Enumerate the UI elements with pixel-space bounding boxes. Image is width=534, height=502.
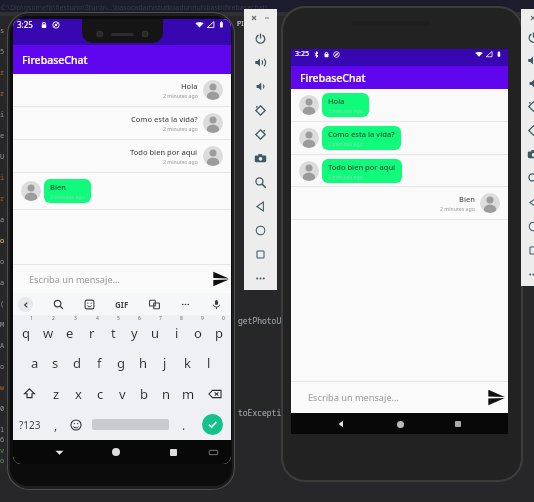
staticText: s	[0, 26, 5, 36]
button[interactable]: Close	[252, 16, 256, 20]
button[interactable]: Stickers	[84, 299, 95, 310]
button[interactable]: More options	[180, 299, 191, 310]
button[interactable]: Rotate right	[244, 122, 277, 146]
button[interactable]: ,	[46, 409, 66, 440]
button[interactable]: More	[521, 262, 534, 286]
button[interactable]: Home	[107, 443, 125, 461]
staticText: o	[194, 324, 202, 342]
button[interactable]: 0	[208, 315, 229, 347]
button[interactable]: Overview	[244, 242, 277, 266]
button[interactable]: 2	[37, 315, 59, 347]
button[interactable]: n	[155, 378, 177, 409]
button[interactable]: Rotate left	[521, 95, 534, 118]
staticText: e	[66, 324, 74, 342]
button[interactable]: Overview	[521, 238, 534, 262]
button[interactable]: 4	[81, 315, 103, 347]
button[interactable]: Take screenshot	[521, 142, 534, 166]
button[interactable]: 9	[187, 315, 208, 347]
staticText: u	[151, 324, 160, 342]
button[interactable]: Power	[521, 26, 534, 49]
button[interactable]: Back	[18, 297, 33, 312]
button[interactable]: .	[174, 409, 194, 440]
button[interactable]: m	[177, 378, 199, 409]
button[interactable]: Volume down	[244, 74, 277, 98]
button[interactable]: Recent apps	[164, 443, 182, 461]
button[interactable]: Escriba un mensaje...	[13, 265, 231, 293]
button[interactable]: Recent apps	[450, 416, 466, 432]
button[interactable]: Take screenshot	[244, 146, 277, 170]
button[interactable]: Backspace	[199, 378, 231, 409]
staticText: FirebaseChat	[300, 71, 366, 85]
button[interactable]: 8	[166, 315, 187, 347]
button[interactable]: Power	[244, 26, 277, 50]
button[interactable]: v	[111, 378, 133, 409]
button[interactable]: Home	[244, 218, 277, 242]
button[interactable]: 1	[15, 315, 37, 347]
button[interactable]: Voice input	[211, 299, 222, 310]
button[interactable]: k	[176, 347, 198, 378]
button[interactable]: c	[89, 378, 111, 409]
button[interactable]: Minimize	[265, 16, 269, 20]
button[interactable]: Todo bien por aqui	[13, 140, 231, 173]
button[interactable]: Back	[50, 443, 68, 461]
button[interactable]: l	[198, 347, 220, 378]
button[interactable]: Back	[244, 194, 277, 218]
button[interactable]: Volume up	[521, 49, 534, 72]
button[interactable]: GIF	[115, 299, 129, 310]
button[interactable]: z	[45, 378, 67, 409]
button[interactable]: Search	[53, 299, 64, 310]
button[interactable]: Send	[213, 271, 229, 287]
button[interactable]: f	[88, 347, 110, 378]
button[interactable]: d	[66, 347, 88, 378]
staticText: .	[182, 417, 186, 433]
button[interactable]: b	[133, 378, 155, 409]
button[interactable]	[86, 409, 174, 440]
button[interactable]: FirebaseChat	[13, 45, 231, 74]
button[interactable]: FirebaseChat	[291, 66, 508, 89]
button[interactable]: Back	[333, 416, 349, 432]
button[interactable]: Back	[521, 190, 534, 214]
button[interactable]: a	[24, 347, 45, 378]
button[interactable]: Send	[488, 389, 505, 406]
staticText: r	[89, 324, 95, 342]
button[interactable]: Rotate left	[244, 98, 277, 122]
button[interactable]: Volume down	[521, 72, 534, 95]
button[interactable]: Escriba un mensaje...	[291, 382, 508, 413]
button[interactable]: Enter	[202, 414, 223, 435]
button[interactable]: Hola	[291, 89, 508, 122]
button[interactable]: Shift	[13, 378, 45, 409]
button[interactable]: Como esta la vida?	[13, 107, 231, 140]
button[interactable]: Emoji	[66, 409, 86, 440]
staticText: Hola	[181, 81, 198, 91]
staticText: Escriba un mensaje...	[29, 273, 120, 286]
button[interactable]: ?123	[13, 409, 46, 440]
button[interactable]: More	[244, 266, 277, 290]
button[interactable]: Close	[531, 16, 534, 20]
button[interactable]: Bien	[13, 173, 231, 210]
staticText: FirebaseChat	[22, 53, 88, 67]
button[interactable]: h	[132, 347, 154, 378]
button[interactable]: Switch keyboard	[204, 443, 222, 461]
staticText: k	[184, 354, 191, 372]
button[interactable]: Home	[392, 416, 408, 432]
button[interactable]: 7	[145, 315, 166, 347]
button[interactable]: Todo bien por aqui	[291, 155, 508, 187]
button[interactable]: j	[154, 347, 176, 378]
button[interactable]: Zoom	[521, 166, 534, 190]
button[interactable]: x	[67, 378, 89, 409]
button[interactable]: Volume up	[244, 50, 277, 74]
button[interactable]: Hola	[13, 74, 231, 107]
button[interactable]: g	[110, 347, 132, 378]
button[interactable]: Rotate right	[521, 118, 534, 142]
button[interactable]: Translate	[149, 299, 160, 310]
button[interactable]: 3	[59, 315, 81, 347]
button[interactable]: Zoom	[244, 170, 277, 194]
staticText: y	[131, 324, 138, 342]
staticText: 5	[117, 315, 120, 322]
button[interactable]: Como esta la vida?	[291, 122, 508, 155]
button[interactable]: Bien	[291, 187, 508, 220]
button[interactable]: Home	[521, 214, 534, 238]
button[interactable]: 6	[124, 315, 145, 347]
button[interactable]: 5	[103, 315, 124, 347]
button[interactable]: s	[45, 347, 66, 378]
